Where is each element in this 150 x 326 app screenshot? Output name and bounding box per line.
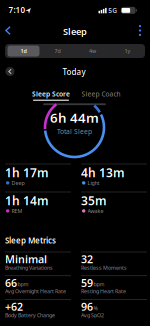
staticText: 7:10 <box>8 5 25 15</box>
button[interactable]: Today <box>54 66 94 78</box>
staticText: 7d <box>54 47 60 55</box>
button[interactable] <box>135 23 145 37</box>
staticText: 5G <box>108 6 117 15</box>
staticText: Awake <box>87 207 103 214</box>
staticText: Sleep Score <box>32 90 70 98</box>
staticText: Today <box>62 66 85 77</box>
button[interactable]: 1d <box>6 44 40 58</box>
staticText: Body Battery Change <box>5 312 55 319</box>
staticText: Light <box>87 179 99 186</box>
button[interactable] <box>5 67 14 76</box>
staticText: Sleep Coach <box>81 90 120 98</box>
staticText: Avg Overnight Heart Rate <box>5 288 66 295</box>
staticText: 6h 44m <box>50 109 99 126</box>
staticText: bpm <box>17 281 28 288</box>
staticText: Deep <box>11 179 24 186</box>
staticText: REM <box>11 207 22 214</box>
button[interactable] <box>2 24 14 36</box>
staticText: Avg SpO2 <box>81 312 104 319</box>
button[interactable]: 7d <box>40 44 74 58</box>
staticText: 1h 14m <box>5 193 49 208</box>
button[interactable]: Sleep Coach <box>74 88 128 100</box>
button[interactable]: 1y <box>110 44 144 58</box>
staticText: 4h 13m <box>81 165 125 180</box>
button[interactable]: 4w <box>75 44 109 58</box>
staticText: Minimal <box>5 252 47 266</box>
staticText: Restless Moments <box>81 264 127 271</box>
staticText: bpm <box>93 281 104 288</box>
staticText: 96 <box>81 299 93 314</box>
staticText: 1y <box>124 47 130 55</box>
staticText: Sleep <box>63 25 87 38</box>
staticText: 4w <box>89 47 96 55</box>
staticText: Sleep Metrics <box>5 235 56 246</box>
button[interactable]: Sleep Score <box>24 88 78 100</box>
staticText: 35m <box>81 193 107 208</box>
staticText: Resting Heart Rate <box>81 288 126 295</box>
staticText: % <box>93 305 97 312</box>
staticText: 59 <box>81 276 93 290</box>
staticText: Breathing Variations <box>5 264 53 271</box>
staticText: 1h 17m <box>5 165 49 180</box>
staticText: 32 <box>81 252 93 266</box>
staticText: 66 <box>5 276 17 290</box>
staticText: +62 <box>5 299 23 314</box>
staticText: Total Sleep <box>57 127 92 136</box>
staticText: 1d <box>20 47 26 55</box>
